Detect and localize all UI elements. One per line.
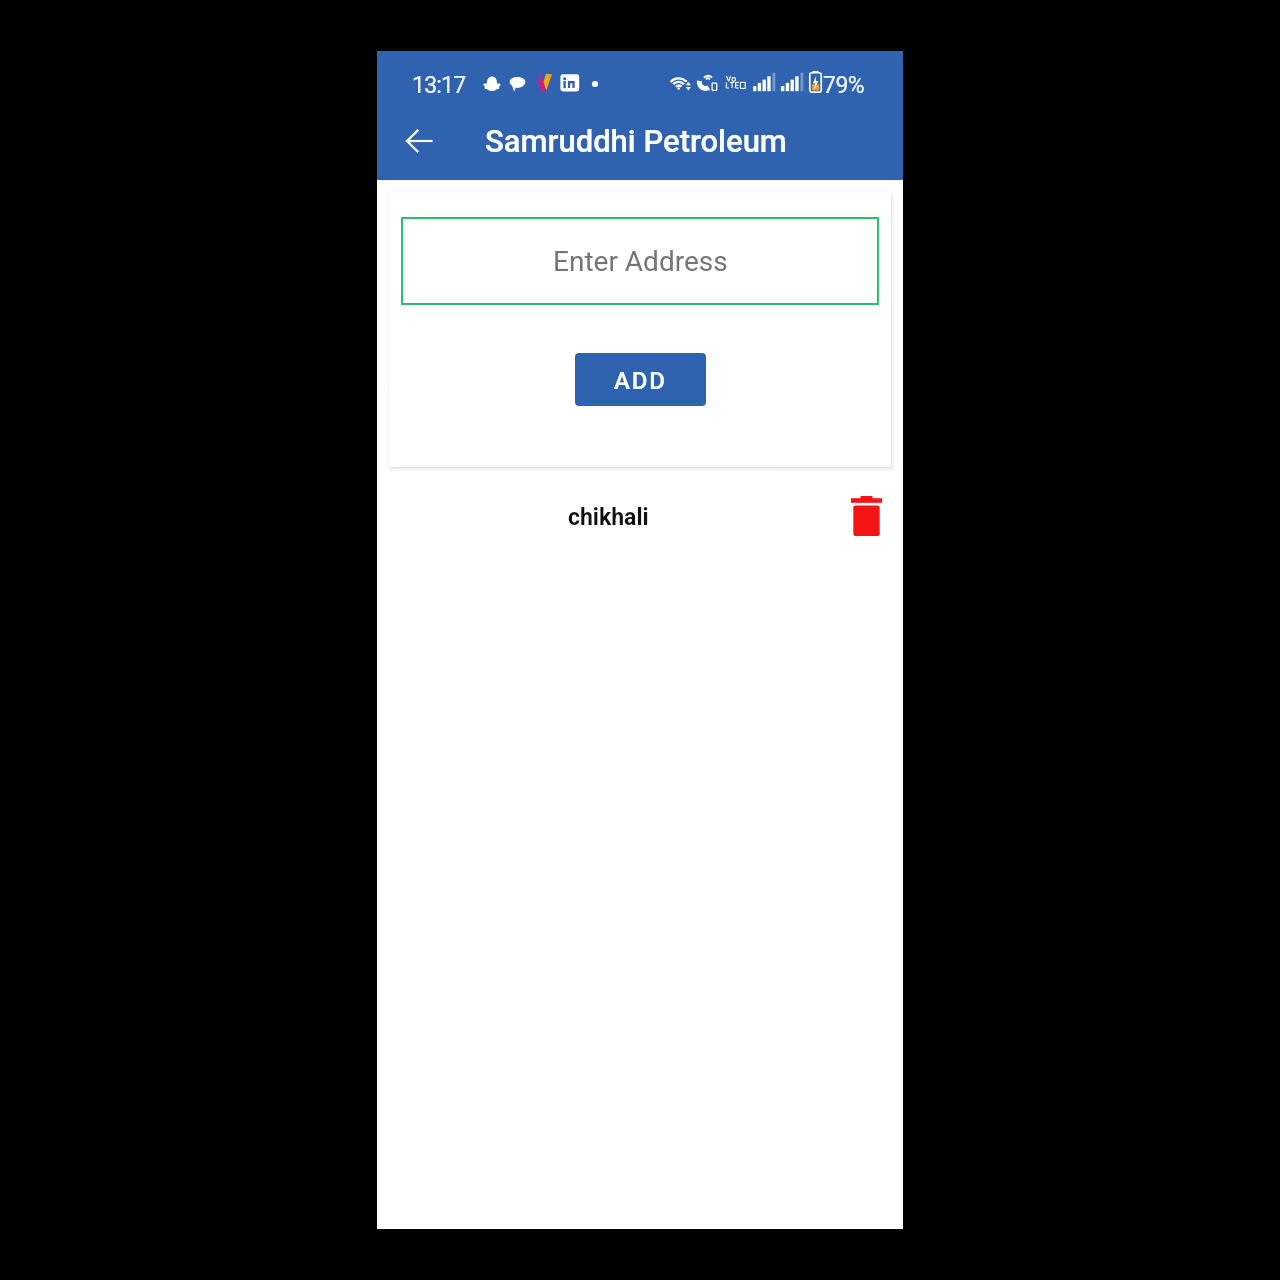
button[interactable]: ADD: [575, 353, 706, 406]
staticText: 13:17: [412, 72, 466, 99]
button[interactable]: Back: [398, 120, 440, 162]
staticText: ADD: [614, 367, 667, 395]
button[interactable]: Enter Address: [401, 217, 879, 305]
button[interactable]: chikhali: [377, 468, 903, 563]
staticText: 79%: [823, 72, 865, 99]
staticText: chikhali: [568, 504, 649, 531]
button[interactable]: Delete: [840, 490, 892, 542]
staticText: Enter Address: [553, 245, 728, 278]
staticText: Samruddhi Petroleum: [485, 123, 787, 159]
